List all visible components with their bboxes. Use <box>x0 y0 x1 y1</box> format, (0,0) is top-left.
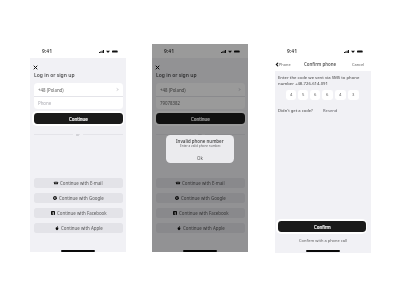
staticText: Continue with Facebook <box>57 210 107 216</box>
button[interactable]: Phone <box>275 62 292 67</box>
button[interactable]: Close <box>31 63 40 72</box>
staticText: or <box>198 132 202 137</box>
staticText: 4 <box>339 92 342 98</box>
button[interactable]: 3 <box>348 90 359 100</box>
staticText: Confirm with a phone call <box>299 238 348 243</box>
button[interactable]: Ok <box>166 153 234 163</box>
staticText: Continue with Apple <box>61 225 103 231</box>
staticText: Confirm phone <box>304 61 337 67</box>
staticText: 5 <box>302 92 305 98</box>
staticText: 79078382 <box>160 100 181 106</box>
button[interactable]: Continue with Google <box>34 193 123 203</box>
staticText: Continue with Facebook <box>179 210 229 216</box>
button[interactable]: 6 <box>310 90 320 100</box>
staticText: Continue with Apple <box>183 225 225 231</box>
staticText: 4 <box>290 92 293 98</box>
staticText: 9:41 <box>164 48 174 55</box>
staticText: Resend <box>323 108 338 114</box>
staticText: Ok <box>197 155 203 161</box>
staticText: Didn't get a code? <box>278 108 313 114</box>
staticText: Continue <box>69 116 88 122</box>
staticText: 6 <box>326 92 329 98</box>
staticText: +48 (Poland) <box>38 87 64 93</box>
staticText: Phone <box>38 100 52 106</box>
staticText: Cancel <box>352 62 365 67</box>
staticText: Enter the code we sent via SMS to phone … <box>278 75 362 86</box>
staticText: Continue with Google <box>181 195 226 201</box>
button[interactable]: Resend <box>323 108 338 114</box>
staticText: Log in or sign up <box>156 72 197 79</box>
staticText: +48 (Poland) <box>160 87 186 93</box>
button[interactable]: 4 <box>335 90 346 100</box>
staticText: 9:41 <box>287 48 297 55</box>
staticText: Invalid phone number <box>176 138 224 144</box>
staticText: Continue with E-mail <box>182 180 225 186</box>
staticText: Enter a valid phone number. <box>180 144 221 148</box>
staticText: Continue with Google <box>59 195 104 201</box>
staticText: Phone <box>279 62 291 67</box>
button[interactable]: +48 (Poland) <box>34 83 123 96</box>
button[interactable]: Cancel <box>350 62 371 67</box>
button[interactable]: Continue with Facebook <box>34 208 123 218</box>
button[interactable]: 6 <box>322 90 333 100</box>
button[interactable]: Confirm with a phone call <box>275 238 371 243</box>
button[interactable]: 5 <box>298 90 308 100</box>
button[interactable]: Confirm <box>276 219 367 234</box>
staticText: 3 <box>352 92 355 98</box>
staticText: 6 <box>314 92 317 98</box>
button[interactable]: Continue with E-mail <box>34 178 123 188</box>
staticText: Log in or sign up <box>34 72 75 79</box>
staticText: Confirm <box>314 224 331 230</box>
button[interactable]: Invalid phone number <box>166 135 234 163</box>
button[interactable]: Continue <box>32 111 124 126</box>
staticText: or <box>76 132 80 137</box>
staticText: Continue <box>191 116 210 122</box>
button[interactable]: 4 <box>286 90 296 100</box>
button[interactable]: Phone <box>34 97 123 109</box>
staticText: Continue with E-mail <box>60 180 103 186</box>
button[interactable]: Continue with Apple <box>34 223 123 233</box>
staticText: 9:41 <box>42 48 52 55</box>
